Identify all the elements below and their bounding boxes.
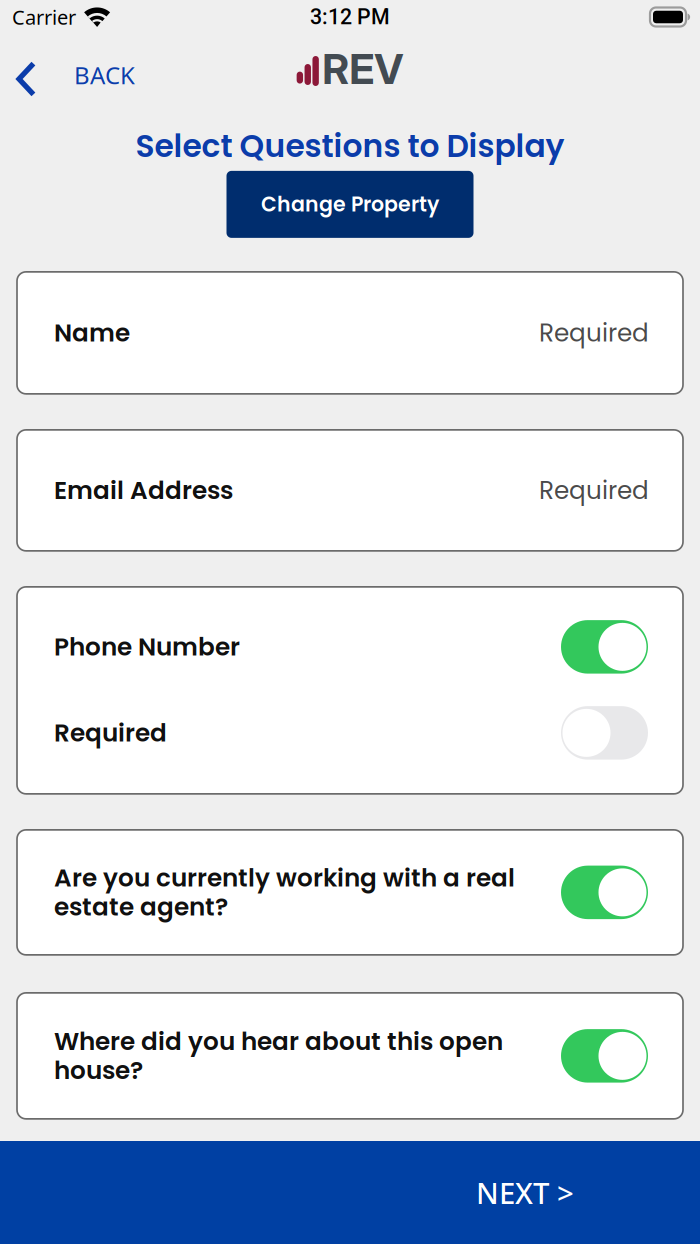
button[interactable]: Enabled, toggle off	[561, 620, 648, 674]
button[interactable]: NEXT >	[0, 1141, 700, 1244]
staticText: Required	[539, 318, 649, 347]
button[interactable]: BACK	[0, 49, 151, 109]
staticText: Select Questions to Display	[135, 124, 564, 168]
staticText: Change Property	[261, 190, 439, 219]
staticText: Carrier	[12, 3, 76, 31]
button[interactable]: Enabled, toggle off	[561, 1029, 648, 1083]
staticText: Name	[54, 318, 130, 347]
button[interactable]: Name	[17, 272, 683, 394]
button[interactable]: Email Address	[17, 430, 683, 551]
staticText: Required	[54, 718, 167, 747]
button[interactable]: Enabled, toggle off	[561, 866, 648, 919]
staticText: Where did you hear about this open house…	[54, 1027, 503, 1085]
staticText: 3:12 PM	[310, 4, 390, 29]
button[interactable]: Change Property	[226, 171, 473, 238]
staticText: REV	[322, 44, 403, 94]
button[interactable]: Disabled, toggle on	[561, 706, 648, 760]
staticText: Phone Number	[54, 632, 240, 661]
staticText: Required	[539, 476, 649, 505]
staticText: Are you currently working with a real es…	[54, 863, 515, 922]
staticText: Email Address	[54, 476, 233, 505]
staticText: NEXT >	[476, 1172, 574, 1212]
staticText: BACK	[74, 59, 135, 91]
